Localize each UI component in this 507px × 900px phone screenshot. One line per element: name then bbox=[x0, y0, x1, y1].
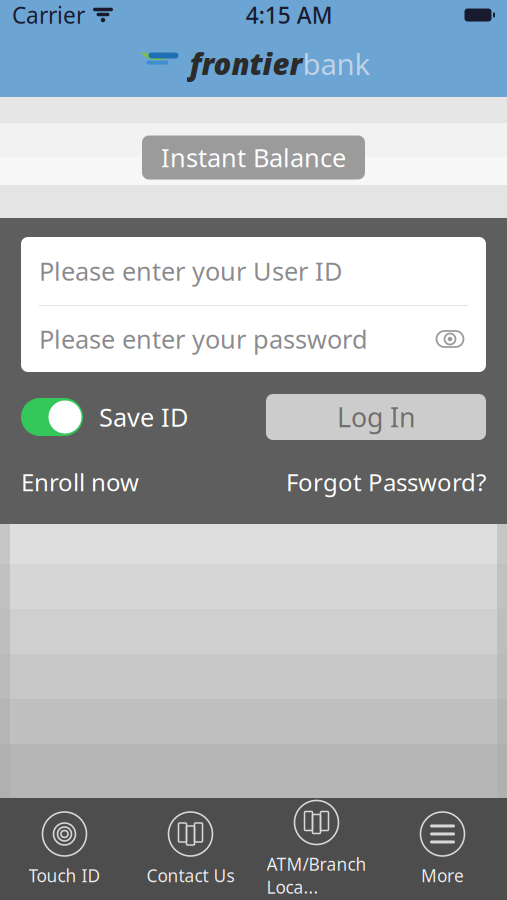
staticText: 4:15 AM bbox=[246, 0, 333, 30]
button[interactable]: More bbox=[379, 804, 505, 894]
button[interactable]: Show password bbox=[432, 321, 468, 357]
staticText: Forgot Password? bbox=[286, 466, 486, 498]
staticText: Please enter your User ID bbox=[39, 254, 342, 288]
button[interactable]: ATM/Branch Loca... bbox=[253, 804, 379, 894]
staticText: Contact Us bbox=[146, 864, 234, 887]
button[interactable]: Touch ID bbox=[1, 804, 127, 894]
button[interactable]: Forgot Password? bbox=[286, 466, 486, 498]
staticText: bank bbox=[302, 44, 370, 83]
button[interactable]: Enroll now bbox=[21, 466, 139, 498]
button[interactable]: Save ID bbox=[21, 398, 188, 436]
staticText: Please enter your password bbox=[39, 322, 368, 356]
button[interactable]: Log In bbox=[266, 394, 486, 440]
staticText: Log In bbox=[337, 399, 415, 435]
button[interactable]: Contact Us bbox=[127, 804, 253, 894]
button[interactable]: Instant Balance bbox=[142, 135, 365, 179]
staticText: ATM/Branch Loca... bbox=[266, 852, 366, 898]
staticText: Enroll now bbox=[21, 466, 139, 498]
staticText: Touch ID bbox=[28, 864, 100, 887]
staticText: Instant Balance bbox=[161, 141, 346, 174]
staticText: Save ID bbox=[99, 400, 188, 434]
staticText: Carrier bbox=[12, 0, 85, 30]
staticText: frontier bbox=[189, 44, 302, 83]
staticText: More bbox=[421, 864, 464, 887]
